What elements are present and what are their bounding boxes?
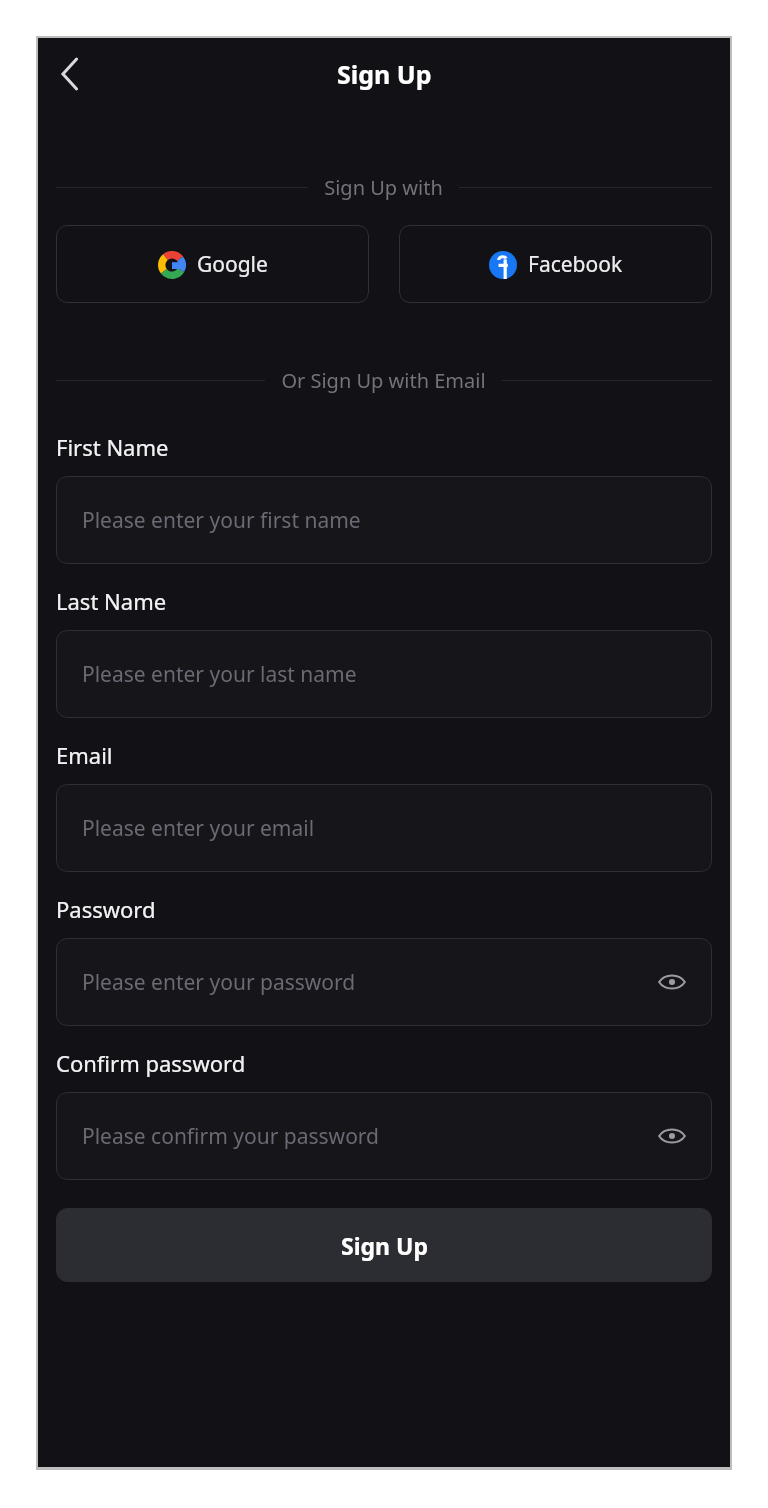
button[interactable]: Please enter your password — [56, 938, 712, 1026]
button[interactable]: Show password — [650, 1114, 694, 1158]
staticText: Email — [56, 740, 113, 770]
staticText: First Name — [56, 432, 169, 462]
button[interactable]: Please enter your email — [56, 784, 712, 872]
staticText: Or Sign Up with Email — [281, 367, 486, 394]
button[interactable]: Sign Up — [56, 1208, 712, 1282]
staticText: Sign Up — [337, 57, 432, 91]
button[interactable]: Please enter your first name — [56, 476, 712, 564]
staticText: Google — [197, 250, 268, 279]
staticText: Please enter your first name — [82, 506, 361, 535]
button[interactable]: Please enter your last name — [56, 630, 712, 718]
staticText: Facebook — [528, 250, 623, 279]
staticText: Sign Up — [341, 1230, 428, 1261]
staticText: Last Name — [56, 586, 167, 616]
button[interactable]: Google — [56, 225, 369, 303]
button[interactable]: Back — [46, 50, 94, 98]
staticText: Please enter your email — [82, 814, 315, 843]
staticText: Confirm password — [56, 1048, 246, 1078]
button[interactable]: Show password — [650, 960, 694, 1004]
button[interactable]: Please confirm your password — [56, 1092, 712, 1180]
staticText: Please confirm your password — [82, 1122, 380, 1151]
staticText: Password — [56, 894, 156, 924]
button[interactable]: Facebook — [399, 225, 712, 303]
staticText: Please enter your last name — [82, 660, 357, 689]
staticText: Sign Up with — [324, 174, 443, 201]
staticText: Please enter your password — [82, 968, 356, 997]
